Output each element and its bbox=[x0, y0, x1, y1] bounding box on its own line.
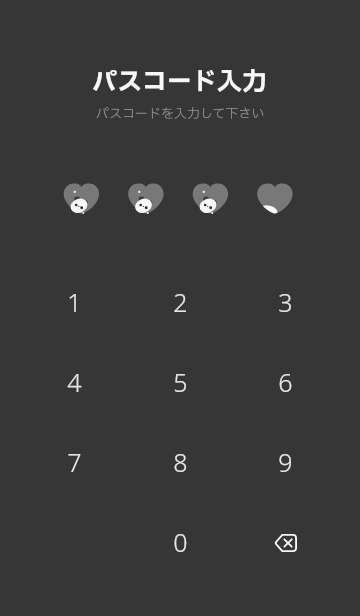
button[interactable]: 0 bbox=[127, 502, 233, 582]
button[interactable]: 8 bbox=[127, 422, 233, 502]
button[interactable]: 5 bbox=[127, 342, 233, 422]
staticText: 1 bbox=[67, 285, 82, 319]
staticText: パスコードを入力して下さい bbox=[96, 104, 265, 123]
staticText: 8 bbox=[173, 445, 188, 479]
button[interactable]: 9 bbox=[232, 422, 338, 502]
staticText: 7 bbox=[67, 445, 82, 479]
staticText: 5 bbox=[173, 365, 188, 399]
staticText: 4 bbox=[67, 365, 82, 399]
button[interactable]: 1 bbox=[21, 262, 127, 342]
staticText: パスコード入力 bbox=[92, 64, 268, 101]
button[interactable]: 3 bbox=[232, 262, 338, 342]
staticText: 3 bbox=[278, 285, 293, 319]
staticText: 0 bbox=[173, 525, 188, 559]
button[interactable]: 4 bbox=[21, 342, 127, 422]
staticText: 9 bbox=[278, 445, 293, 479]
button[interactable]: 6 bbox=[232, 342, 338, 422]
button[interactable]: 7 bbox=[21, 422, 127, 502]
button[interactable]: Backspace bbox=[232, 503, 338, 583]
staticText: 2 bbox=[173, 285, 188, 319]
button[interactable]: 2 bbox=[127, 262, 233, 342]
staticText: 6 bbox=[278, 365, 293, 399]
